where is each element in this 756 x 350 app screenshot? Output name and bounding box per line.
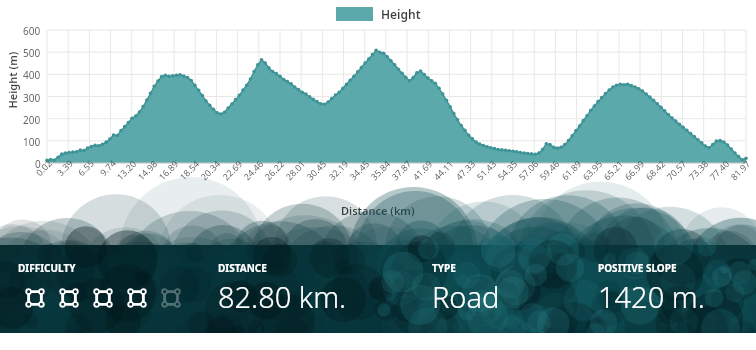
staticText: 73.38 bbox=[686, 157, 711, 182]
staticText: 0.02 bbox=[33, 157, 54, 178]
staticText: 59.46 bbox=[537, 157, 562, 182]
button[interactable]: TYPE bbox=[424, 245, 592, 333]
staticText: 600 bbox=[23, 24, 41, 38]
staticText: 41.69 bbox=[410, 157, 435, 182]
staticText: Height (m) bbox=[4, 51, 19, 108]
staticText: 57.06 bbox=[516, 157, 541, 182]
staticText: 66.99 bbox=[622, 157, 647, 182]
staticText: Height bbox=[381, 6, 421, 22]
staticText: 400 bbox=[23, 68, 41, 82]
other: Difficulty 1 of 5 bbox=[18, 281, 52, 315]
staticText: 65.21 bbox=[601, 157, 626, 182]
staticText: 1420 m. bbox=[598, 277, 705, 316]
staticText: 9.74 bbox=[97, 157, 118, 178]
staticText: 81.97 bbox=[728, 157, 753, 182]
staticText: 28.01 bbox=[283, 157, 308, 182]
other: Difficulty 2 of 5 bbox=[52, 281, 86, 315]
staticText: 24.46 bbox=[241, 157, 266, 182]
button[interactable]: DISTANCE bbox=[212, 245, 424, 333]
staticText: 77.40 bbox=[707, 157, 732, 182]
staticText: 51.43 bbox=[474, 157, 499, 182]
staticText: 68.42 bbox=[643, 157, 668, 182]
button[interactable]: DIFFICULTY bbox=[0, 245, 212, 333]
staticText: 70.57 bbox=[664, 157, 689, 182]
staticText: 44.11 bbox=[431, 157, 456, 182]
other: Difficulty 4 of 5 bbox=[120, 281, 154, 315]
staticText: 82.80 km. bbox=[218, 277, 347, 316]
staticText: 37.87 bbox=[389, 157, 414, 182]
staticText: TYPE bbox=[432, 261, 456, 275]
staticText: 61.89 bbox=[559, 157, 584, 182]
staticText: 16.89 bbox=[156, 157, 181, 182]
staticText: 35.84 bbox=[368, 157, 393, 182]
staticText: 30.45 bbox=[304, 157, 329, 182]
staticText: 20.34 bbox=[198, 157, 223, 182]
staticText: 22.69 bbox=[220, 157, 245, 182]
staticText: 3.39 bbox=[54, 157, 75, 178]
staticText: 6.55 bbox=[75, 157, 96, 178]
staticText: 14.98 bbox=[135, 157, 160, 182]
staticText: 200 bbox=[23, 113, 41, 127]
staticText: POSITIVE SLOPE bbox=[598, 261, 677, 275]
staticText: 13.20 bbox=[114, 157, 139, 182]
button[interactable]: POSITIVE SLOPE bbox=[592, 245, 756, 333]
staticText: 0 bbox=[35, 157, 41, 171]
staticText: 26.22 bbox=[262, 157, 287, 182]
staticText: Distance (km) bbox=[341, 203, 415, 218]
staticText: Road bbox=[432, 277, 500, 316]
other: Difficulty 5 of 5 bbox=[154, 281, 188, 315]
staticText: 47.33 bbox=[453, 157, 478, 182]
staticText: 100 bbox=[23, 135, 41, 149]
staticText: DISTANCE bbox=[218, 261, 267, 275]
other: Difficulty 3 of 5 bbox=[86, 281, 120, 315]
staticText: 54.35 bbox=[495, 157, 520, 182]
staticText: 18.54 bbox=[177, 157, 202, 182]
staticText: 34.45 bbox=[347, 157, 372, 182]
staticText: 32.19 bbox=[326, 157, 351, 182]
staticText: 300 bbox=[23, 91, 41, 105]
button[interactable]: Height bbox=[336, 6, 421, 22]
staticText: DIFFICULTY bbox=[18, 261, 76, 275]
staticText: 63.95 bbox=[580, 157, 605, 182]
staticText: 500 bbox=[23, 46, 41, 60]
